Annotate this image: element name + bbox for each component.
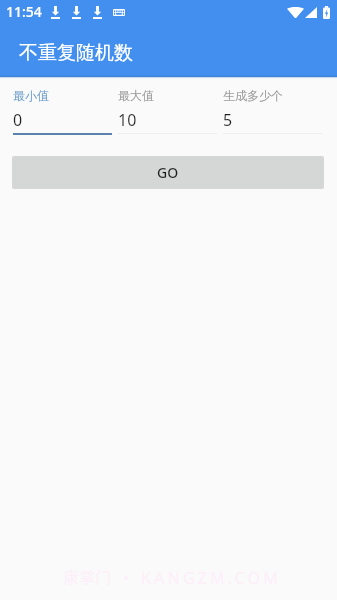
staticText: 最大值 [118, 88, 154, 103]
staticText: 11:54 [6, 2, 42, 21]
button[interactable]: 最小值 [0, 88, 105, 135]
other: Battery charging [323, 6, 330, 19]
button[interactable]: 最大值 [105, 88, 210, 134]
staticText: 康掌门 [63, 568, 111, 588]
staticText: 5 [223, 109, 233, 131]
staticText: 0 [13, 109, 23, 131]
button[interactable]: GO [12, 156, 324, 189]
other: Wi-Fi [287, 7, 304, 18]
button[interactable]: 生成多少个 [210, 88, 315, 134]
staticText: 不重复随机数 [19, 41, 133, 65]
staticText: KANGZM.COM [141, 567, 281, 589]
other: Download [93, 6, 102, 19]
staticText: 最小值 [13, 88, 49, 103]
staticText: 生成多少个 [223, 88, 283, 103]
other: Keyboard [113, 9, 125, 16]
other: Mobile signal [305, 7, 317, 18]
staticText: GO [157, 163, 179, 182]
other: Download [51, 6, 60, 19]
staticText: 10 [118, 109, 137, 131]
other: Download [72, 6, 81, 19]
